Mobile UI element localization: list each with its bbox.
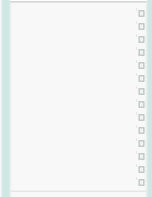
other: Toggle item 9: [137, 113, 146, 122]
button[interactable]: Toggle item 3: [0, 33, 152, 46]
other: Toggle item 8: [137, 100, 146, 109]
button[interactable]: Toggle item 11: [0, 137, 152, 150]
other: Toggle item 3: [137, 35, 146, 44]
other: Toggle item 14: [137, 178, 146, 187]
button[interactable]: Toggle item 13: [0, 163, 152, 176]
other: Toggle item 12: [137, 152, 146, 161]
other: Toggle item 5: [137, 61, 146, 70]
other: Toggle item 11: [137, 139, 146, 148]
button[interactable]: Toggle item 1: [0, 7, 152, 20]
button[interactable]: Toggle item 10: [0, 124, 152, 137]
other: Toggle item 13: [137, 165, 146, 174]
button[interactable]: Toggle item 5: [0, 59, 152, 72]
button[interactable]: Toggle item 2: [0, 20, 152, 33]
other: Toggle item 1: [137, 9, 146, 18]
other: Toggle item 2: [137, 22, 146, 31]
button[interactable]: Toggle item 4: [0, 46, 152, 59]
button[interactable]: Toggle item 9: [0, 111, 152, 124]
other: Toggle item 10: [137, 126, 146, 135]
other: Toggle item 4: [137, 48, 146, 57]
other: Toggle item 7: [137, 87, 146, 96]
button[interactable]: Toggle item 6: [0, 72, 152, 85]
button[interactable]: Toggle item 12: [0, 150, 152, 163]
button[interactable]: Toggle item 14: [0, 176, 152, 189]
button[interactable]: Toggle item 8: [0, 98, 152, 111]
button[interactable]: Toggle item 7: [0, 85, 152, 98]
other: Toggle item 6: [137, 74, 146, 83]
